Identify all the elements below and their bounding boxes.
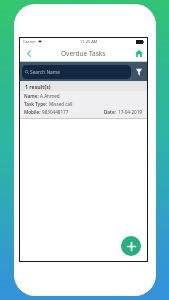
button[interactable]: Search Name (22, 65, 131, 79)
staticText: 9830448177 (42, 109, 69, 115)
staticText: Missed call (49, 101, 73, 107)
button[interactable]: Name: (20, 91, 147, 118)
staticText: 11:25 AM (80, 39, 98, 44)
staticText: A.Ahmed (40, 93, 60, 99)
staticText: Name: (24, 93, 40, 99)
staticText: Search Name (30, 69, 60, 76)
staticText: Date: (104, 109, 118, 115)
button[interactable]: Home (133, 48, 144, 59)
staticText: Task Type: (24, 101, 49, 107)
staticText: 1 result(s) (25, 83, 51, 90)
staticText: 17-04-2019 (118, 109, 142, 115)
button[interactable]: Add task (121, 236, 141, 256)
staticText: Mobile: (24, 109, 42, 115)
staticText: Overdue Tasks (61, 49, 106, 58)
staticText: Carrier (23, 39, 37, 44)
button[interactable]: Back (23, 48, 34, 59)
button[interactable]: Filter (133, 65, 144, 79)
